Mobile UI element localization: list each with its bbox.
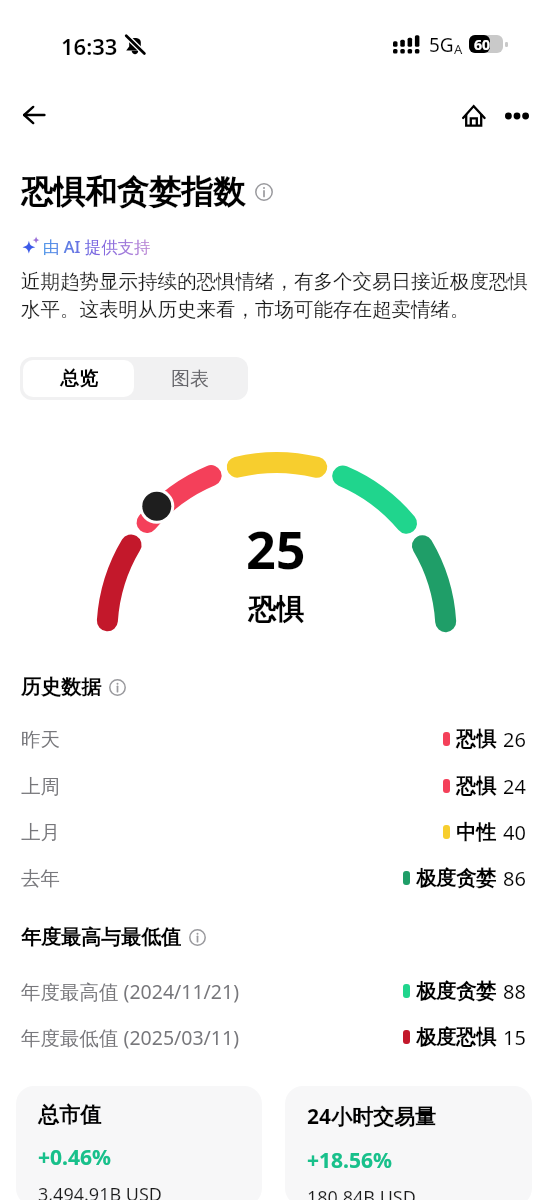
staticText: 86 xyxy=(503,865,526,892)
staticText: 40 xyxy=(503,819,526,846)
staticText: 昨天 xyxy=(21,727,60,752)
staticText: 上周 xyxy=(21,774,60,799)
button[interactable]: 图表 xyxy=(134,360,245,397)
staticText: 极度贪婪 xyxy=(416,866,496,891)
staticText: 年度最高值 (2024/11/21) xyxy=(21,978,240,1005)
staticText: 88 xyxy=(503,978,526,1005)
staticText: 26 xyxy=(503,726,526,753)
staticText: 上月 xyxy=(21,820,60,845)
staticText: +0.46% xyxy=(38,1143,111,1172)
button[interactable]: 总市值 xyxy=(16,1086,262,1200)
button[interactable]: More options xyxy=(494,93,540,139)
staticText: 去年 xyxy=(21,866,60,891)
staticText: 极度贪婪 xyxy=(416,979,496,1004)
button[interactable]: 上周 xyxy=(0,763,552,809)
button[interactable]: 年度最高值 (2024/11/21) xyxy=(0,968,552,1014)
staticText: 180.84B USD xyxy=(307,1185,416,1200)
staticText: 15 xyxy=(503,1024,526,1051)
staticText: 24小时交易量 xyxy=(307,1102,437,1131)
staticText: 恐惧 xyxy=(456,727,496,752)
staticText: 图表 xyxy=(171,367,209,391)
button[interactable]: Home xyxy=(452,94,496,138)
staticText: 恐惧 xyxy=(456,774,496,799)
staticText: 恐惧和贪婪指数 xyxy=(21,172,245,212)
staticText: 极度恐惧 xyxy=(416,1025,496,1050)
button[interactable]: 昨天 xyxy=(0,716,552,762)
staticText: 历史数据 xyxy=(21,675,101,700)
button[interactable]: Back xyxy=(10,91,58,139)
staticText: 24 xyxy=(503,773,526,800)
staticText: 恐惧 xyxy=(248,592,304,627)
staticText: 由 AI 提供支持 xyxy=(43,235,151,258)
staticText: +18.56% xyxy=(307,1146,392,1175)
button[interactable]: 年度最低值 (2025/03/11) xyxy=(0,1014,552,1060)
button[interactable]: 去年 xyxy=(0,855,552,901)
staticText: 16:33 xyxy=(61,31,118,61)
button[interactable]: 总览 xyxy=(23,360,134,397)
staticText: 60 xyxy=(474,35,491,53)
staticText: 年度最低值 (2025/03/11) xyxy=(21,1024,240,1051)
staticText: 25 xyxy=(246,513,306,584)
staticText: 5G xyxy=(429,32,454,58)
button[interactable]: 上月 xyxy=(0,809,552,855)
staticText: 近期趋势显示持续的恐惧情绪，有多个交易日接近极度恐惧水平。这表明从历史来看，市场… xyxy=(21,269,535,322)
staticText: 中性 xyxy=(456,820,496,845)
staticText: 总览 xyxy=(60,367,98,391)
staticText: 总市值 xyxy=(38,1102,101,1128)
staticText: A xyxy=(454,40,463,58)
staticText: 3,494.91B USD xyxy=(38,1182,162,1200)
button[interactable]: 24小时交易量 xyxy=(285,1086,532,1200)
staticText: 年度最高与最低值 xyxy=(21,925,181,950)
